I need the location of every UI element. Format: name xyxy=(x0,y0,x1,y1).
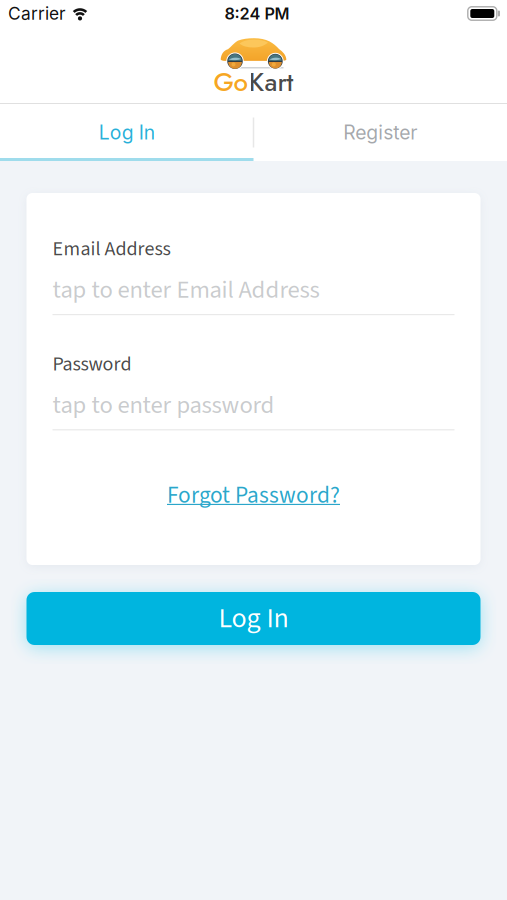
button[interactable]: tap to enter Email Address xyxy=(52,258,454,315)
staticText: Go xyxy=(213,63,248,101)
button[interactable]: Register xyxy=(253,104,507,161)
staticText: Log In xyxy=(99,121,155,144)
staticText: Log In xyxy=(218,599,288,638)
staticText: 8:24 PM xyxy=(224,4,289,23)
staticText: Carrier xyxy=(8,3,66,24)
staticText: Register xyxy=(343,121,417,144)
button[interactable]: Forgot Password? xyxy=(167,482,340,508)
staticText: tap to enter password xyxy=(52,388,274,423)
button[interactable]: Log In xyxy=(0,104,253,161)
staticText: Forgot Password? xyxy=(167,479,340,512)
button[interactable]: tap to enter password xyxy=(52,373,454,430)
staticText: Kart xyxy=(248,63,293,101)
button[interactable]: Log In xyxy=(26,592,480,645)
staticText: Email Address xyxy=(52,235,170,263)
staticText: tap to enter Email Address xyxy=(52,272,319,307)
staticText: Password xyxy=(52,350,131,378)
